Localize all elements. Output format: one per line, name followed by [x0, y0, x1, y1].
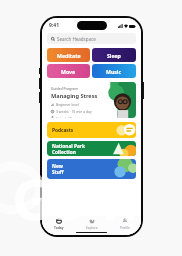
staticText: Today	[54, 225, 64, 229]
staticText: 9:41	[49, 22, 59, 29]
button[interactable]: Today	[42, 216, 75, 230]
button[interactable]: National Park Collection	[47, 141, 136, 156]
button[interactable]: Search Headspace	[47, 33, 136, 44]
staticText: Meditate	[57, 52, 81, 59]
staticText: Search Headspace	[57, 36, 96, 42]
staticText: Unlock 30 sessions	[56, 116, 87, 118]
staticText: New Stuff	[52, 163, 64, 175]
button[interactable]: Guided Program	[47, 82, 136, 118]
button[interactable]: Sleep	[92, 48, 136, 62]
staticText: National Park Collection	[52, 143, 104, 155]
button[interactable]: Profile	[108, 216, 141, 230]
staticText: Music	[106, 68, 122, 75]
staticText: Profile	[120, 225, 130, 229]
staticText: GSm	[12, 160, 138, 236]
staticText: Managing Stress	[51, 92, 98, 100]
button[interactable]: Music	[92, 64, 136, 78]
staticText: Sleep	[107, 52, 121, 59]
staticText: 3 weeks · 10 min a day	[56, 109, 92, 114]
staticText: Explore	[86, 225, 98, 229]
staticText: Beginner level	[56, 102, 79, 107]
staticText: Move	[61, 68, 76, 75]
staticText: Guided Program	[51, 86, 78, 91]
button[interactable]: New Stuff	[47, 159, 136, 179]
button[interactable]: Explore	[75, 216, 108, 230]
staticText: Podcasts	[52, 127, 74, 134]
button[interactable]: Move	[47, 64, 90, 78]
button[interactable]: Meditate	[47, 48, 90, 62]
button[interactable]: Podcasts	[47, 122, 136, 138]
